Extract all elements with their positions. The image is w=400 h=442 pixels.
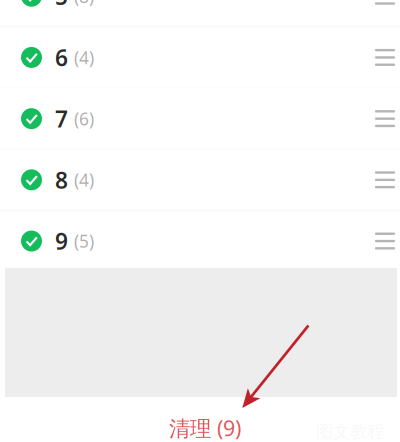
staticText: 5 bbox=[55, 0, 68, 11]
staticText: 8 bbox=[55, 165, 68, 195]
staticText: (5) bbox=[74, 229, 94, 252]
staticText: 7 bbox=[55, 104, 68, 134]
button[interactable]: Group 9, 5 files bbox=[0, 211, 400, 271]
staticText: 6 bbox=[55, 42, 68, 72]
staticText: (4) bbox=[74, 46, 94, 69]
button[interactable]: 清理 (9) bbox=[5, 406, 400, 442]
staticText: (8) bbox=[74, 0, 94, 8]
button[interactable]: Group 5, 8 files bbox=[0, 0, 400, 26]
button[interactable]: Group 8, 4 files bbox=[0, 150, 400, 210]
staticText: 清理 (9) bbox=[169, 414, 241, 442]
staticText: 9 bbox=[55, 226, 68, 256]
staticText: (4) bbox=[74, 168, 94, 191]
button[interactable]: Group 7, 6 files bbox=[0, 88, 400, 149]
button[interactable]: Group 6, 4 files bbox=[0, 27, 400, 88]
staticText: (6) bbox=[74, 107, 94, 130]
